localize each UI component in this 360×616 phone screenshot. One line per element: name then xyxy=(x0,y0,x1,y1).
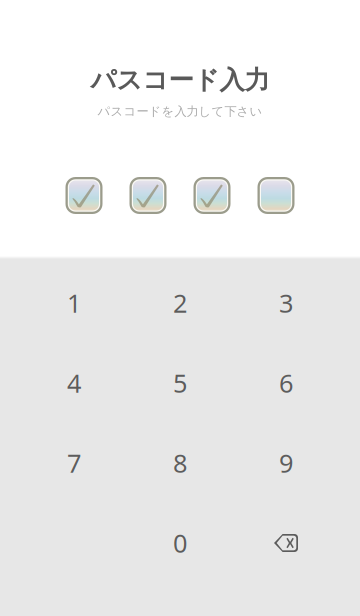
staticText: 6 xyxy=(279,366,293,400)
button[interactable]: 5 xyxy=(127,343,233,423)
staticText: 3 xyxy=(279,286,293,320)
button[interactable]: 4 xyxy=(21,343,127,423)
staticText: 4 xyxy=(67,366,81,400)
button[interactable]: Delete xyxy=(233,503,339,583)
staticText: パスコードを入力して下さい xyxy=(97,104,262,119)
staticText: 0 xyxy=(173,526,187,560)
button[interactable]: 7 xyxy=(21,423,127,503)
staticText: 1 xyxy=(67,286,81,320)
staticText: パスコード入力 xyxy=(90,64,269,95)
button[interactable]: 3 xyxy=(233,263,339,343)
button[interactable]: 1 xyxy=(21,263,127,343)
button[interactable]: 2 xyxy=(127,263,233,343)
button[interactable]: 0 xyxy=(127,503,233,583)
button[interactable]: 6 xyxy=(233,343,339,423)
staticText: 9 xyxy=(279,446,293,480)
staticText: 8 xyxy=(173,446,187,480)
staticText: 2 xyxy=(173,286,187,320)
staticText: 7 xyxy=(67,446,81,480)
button[interactable]: 8 xyxy=(127,423,233,503)
staticText: 5 xyxy=(173,366,187,400)
button[interactable]: 9 xyxy=(233,423,339,503)
